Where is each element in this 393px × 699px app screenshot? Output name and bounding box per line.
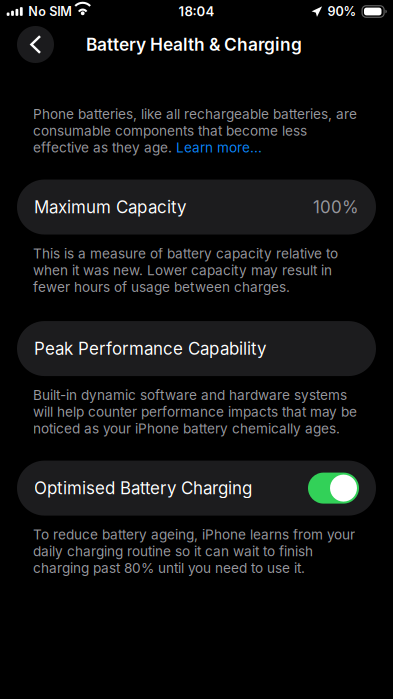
staticText: 90% — [328, 4, 357, 19]
staticText: This is a measure of battery capacity re… — [33, 245, 338, 295]
button[interactable]: Maximum Capacity — [17, 179, 376, 234]
staticText: Peak Performance Capability — [34, 338, 266, 359]
staticText: Built-in dynamic software and hardware s… — [33, 387, 357, 437]
staticText: To reduce battery ageing, iPhone learns … — [33, 527, 355, 576]
staticText: Maximum Capacity — [34, 197, 186, 217]
staticText: Optimised Battery Charging — [34, 478, 252, 498]
staticText: Battery Health & Charging — [86, 34, 302, 55]
staticText: Phone batteries, like all rechargeable b… — [33, 106, 357, 155]
button[interactable]: Back — [17, 26, 54, 63]
staticText: 100% — [313, 197, 359, 217]
button[interactable]: Peak Performance Capability — [17, 321, 376, 376]
staticText: No SIM — [28, 4, 72, 19]
button[interactable]: Optimised Battery Charging — [308, 473, 359, 504]
staticText: 18:04 — [178, 3, 214, 19]
